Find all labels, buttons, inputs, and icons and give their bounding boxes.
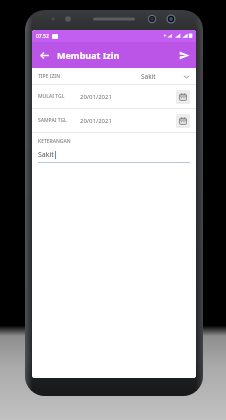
staticText: TIPE IZIN — [38, 73, 61, 80]
button[interactable]: TIPE IZIN — [32, 68, 196, 84]
button[interactable]: Send — [175, 46, 193, 64]
staticText: Sakit — [141, 72, 183, 81]
staticText: Membuat Izin — [57, 49, 120, 61]
staticText: Sakit — [38, 150, 54, 160]
button[interactable]: MULAI TGL — [32, 85, 196, 108]
staticText: KETERANGAN — [38, 138, 71, 145]
staticText: MULAI TGL — [38, 93, 72, 100]
staticText: 20/01/2021 — [80, 117, 112, 125]
staticText: SAMPAI TGL — [38, 117, 72, 124]
button[interactable]: Back — [35, 46, 53, 64]
staticText: 07.52 — [36, 33, 49, 40]
button[interactable]: Sakit — [38, 150, 190, 163]
button[interactable]: Pick date for SAMPAI TGL — [176, 114, 190, 128]
button[interactable]: SAMPAI TGL — [32, 109, 196, 132]
staticText: 20/01/2021 — [80, 93, 112, 101]
button[interactable]: Pick date for MULAI TGL — [176, 90, 190, 104]
